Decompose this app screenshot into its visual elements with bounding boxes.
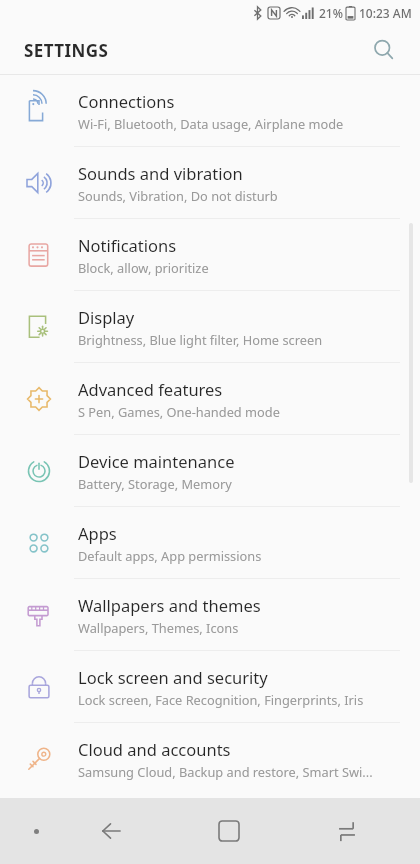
button[interactable]: Wallpapers and themes [0,579,420,651]
staticText: Apps [78,522,117,544]
staticText: Wallpapers, Themes, Icons [78,619,239,636]
staticText: 10:23 AM [359,5,412,21]
staticText: Connections [78,90,175,112]
staticText: Cloud and accounts [78,738,231,760]
button[interactable]: Advanced features [0,363,420,435]
staticText: Sounds and vibration [78,162,243,184]
button[interactable]: Notifications [0,219,420,291]
button[interactable]: Device maintenance [0,435,420,507]
staticText: Display [78,306,135,328]
staticText: Lock screen and security [78,666,268,688]
button[interactable]: Search [362,28,406,72]
button[interactable]: Display [0,291,420,363]
button[interactable]: Home [170,803,288,859]
staticText: Brightness, Blue light filter, Home scre… [78,331,323,348]
staticText: SETTINGS [24,39,109,62]
staticText: 21% [319,5,343,21]
staticText: Sounds, Vibration, Do not disturb [78,187,278,204]
staticText: Wi-Fi, Bluetooth, Data usage, Airplane m… [78,115,344,132]
staticText: Advanced features [78,378,223,400]
staticText: Wallpapers and themes [78,594,261,616]
button[interactable]: Lock screen and security [0,651,420,723]
staticText: Block, allow, prioritize [78,259,209,276]
button[interactable]: Sounds and vibration [0,147,420,219]
button[interactable]: Apps [0,507,420,579]
staticText: Default apps, App permissions [78,547,262,564]
staticText: Battery, Storage, Memory [78,475,232,492]
button[interactable]: Back [52,803,170,859]
button[interactable]: Recents [288,803,406,859]
staticText: S Pen, Games, One-handed mode [78,403,280,420]
staticText: Samsung Cloud, Backup and restore, Smart… [78,763,373,780]
button[interactable]: Cloud and accounts [0,723,420,794]
staticText: Device maintenance [78,450,235,472]
staticText: Notifications [78,234,177,256]
button[interactable]: Connections [0,75,420,147]
staticText: Lock screen, Face Recognition, Fingerpri… [78,691,364,708]
